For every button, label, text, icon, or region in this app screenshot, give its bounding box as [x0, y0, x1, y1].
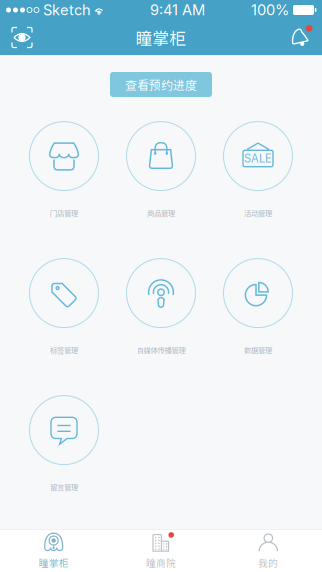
staticText: 100%: [251, 1, 289, 19]
button[interactable]: 标签管理: [15, 252, 112, 362]
staticText: Sketch: [43, 1, 91, 19]
button[interactable]: Scan: [0, 20, 44, 55]
staticText: 瞳掌柜: [135, 25, 186, 49]
staticText: 留言管理: [50, 482, 78, 492]
button[interactable]: 自媒体传播管理: [112, 252, 209, 362]
staticText: 活动管理: [244, 208, 272, 218]
button[interactable]: 数据管理: [209, 252, 306, 362]
staticText: 数据管理: [244, 345, 272, 355]
button[interactable]: 商品管理: [112, 115, 209, 225]
staticText: 自媒体传播管理: [136, 345, 185, 355]
staticText: 瞳商院: [146, 555, 176, 569]
button[interactable]: SALE: [209, 115, 306, 225]
staticText: 我的: [258, 555, 278, 569]
button[interactable]: Notifications: [278, 20, 322, 55]
staticText: 查看预约进度: [125, 76, 197, 93]
staticText: 门店管理: [50, 208, 78, 218]
button[interactable]: 瞳商院: [107, 529, 215, 572]
staticText: 9:41 AM: [150, 1, 205, 19]
staticText: 商品管理: [147, 208, 175, 218]
staticText: 标签管理: [50, 345, 78, 355]
button[interactable]: 我的: [215, 529, 322, 572]
staticText: SALE: [244, 152, 272, 165]
staticText: 瞳掌柜: [39, 555, 69, 569]
button[interactable]: 门店管理: [15, 115, 112, 225]
button[interactable]: 留言管理: [15, 389, 112, 499]
button[interactable]: 查看预约进度: [110, 72, 212, 97]
button[interactable]: 瞳掌柜: [0, 529, 107, 572]
